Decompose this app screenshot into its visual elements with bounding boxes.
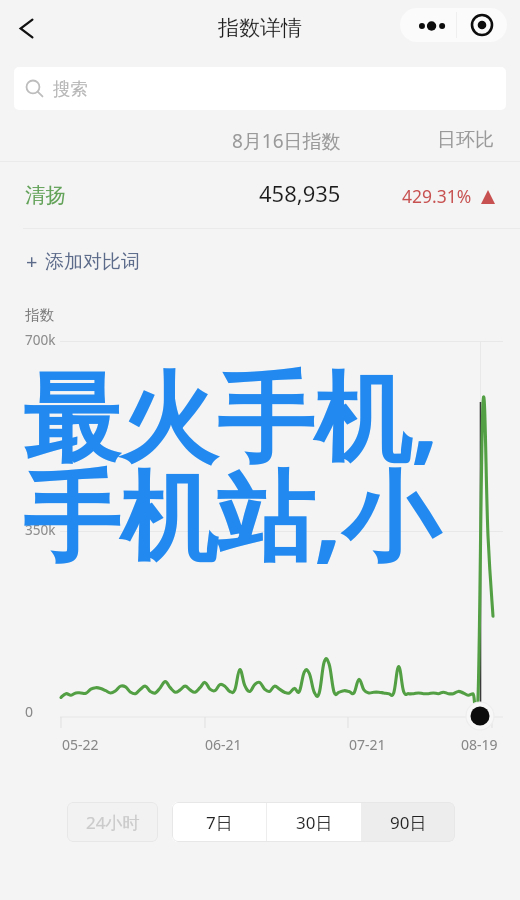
staticText: 06-21 (205, 735, 242, 754)
staticText: 700k (25, 331, 56, 349)
staticText: 手机站,小 (23, 447, 439, 579)
staticText: 指数详情 (218, 15, 302, 41)
staticText: 90日 (390, 811, 427, 834)
staticText: 24小时 (86, 811, 140, 834)
staticText: + (26, 248, 38, 275)
staticText: 添加对比词 (45, 250, 140, 274)
staticText: 429.31% (402, 184, 472, 208)
button[interactable]: 24小时 (67, 802, 158, 842)
button[interactable]: + (26, 248, 133, 275)
staticText: 05-22 (62, 735, 99, 754)
button[interactable]: 90日 (362, 802, 455, 842)
staticText: 8月16日指数 (232, 128, 341, 154)
staticText: 07-21 (349, 735, 386, 754)
staticText: 0 (25, 702, 34, 721)
staticText: 30日 (296, 811, 333, 834)
staticText: 日环比 (437, 128, 494, 152)
staticText: 458,935 (259, 178, 341, 208)
staticText: 清扬 (25, 182, 66, 208)
button[interactable]: 30日 (267, 802, 361, 842)
button[interactable]: Back (8, 10, 45, 47)
staticText: 350k (25, 521, 56, 539)
staticText: 指数 (25, 306, 54, 324)
button[interactable]: More (400, 8, 456, 42)
button[interactable]: Close (457, 8, 507, 42)
staticText: 08-19 (461, 735, 498, 754)
staticText: 7日 (206, 811, 233, 834)
staticText: 最火手机, (23, 348, 439, 480)
button[interactable]: 搜索 (14, 67, 506, 110)
button[interactable]: 7日 (172, 802, 266, 842)
staticText: 搜索 (53, 78, 88, 100)
